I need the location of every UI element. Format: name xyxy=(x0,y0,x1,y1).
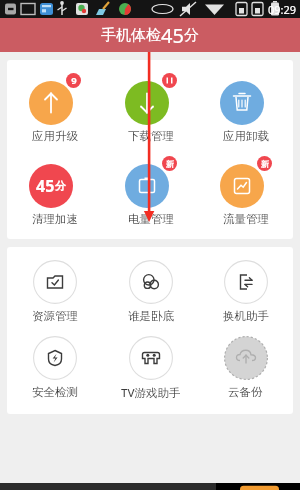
staticText: TV游戏助手 xyxy=(121,385,181,401)
staticText: 资源管理 xyxy=(32,309,78,323)
staticText: 45 xyxy=(36,175,55,197)
button[interactable]: 新 xyxy=(103,156,198,226)
staticText: 下载管理 xyxy=(128,129,174,143)
button[interactable]: 下载管理 xyxy=(103,73,198,143)
button[interactable]: 资源管理 xyxy=(7,260,103,323)
staticText: 分 xyxy=(184,26,199,45)
staticText: 云备份 xyxy=(228,385,263,399)
staticText: 手机体检 xyxy=(101,26,161,45)
staticText: 09:29 xyxy=(268,2,297,17)
button[interactable]: 新 xyxy=(198,156,293,226)
staticText: 45 xyxy=(161,22,184,49)
staticText: 换机助手 xyxy=(223,309,269,323)
staticText: 9 xyxy=(71,74,77,87)
button[interactable]: TV游戏助手 xyxy=(103,336,198,401)
staticText: 新 xyxy=(166,159,174,169)
button[interactable]: 安全检测 xyxy=(7,336,103,399)
staticText: 分 xyxy=(55,179,66,193)
button[interactable]: 应用卸载 xyxy=(198,73,293,143)
staticText: 流量管理 xyxy=(223,212,269,226)
button[interactable]: 9 xyxy=(7,73,103,143)
button[interactable]: 45 xyxy=(7,156,103,226)
staticText: 谁是卧底 xyxy=(128,309,174,323)
button[interactable]: 云备份 xyxy=(198,336,293,399)
staticText: 应用升级 xyxy=(32,129,78,143)
staticText: 应用卸载 xyxy=(223,129,269,143)
button[interactable]: 谁是卧底 xyxy=(103,260,198,323)
staticText: 清理加速 xyxy=(32,212,78,226)
staticText: 电量管理 xyxy=(128,212,174,226)
button[interactable]: 换机助手 xyxy=(198,260,293,323)
staticText: 新 xyxy=(261,159,269,169)
staticText: 安全检测 xyxy=(32,385,78,399)
